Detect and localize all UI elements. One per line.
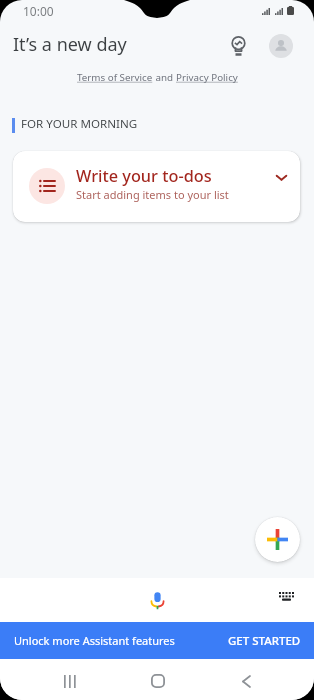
button[interactable]: Home [138, 661, 178, 700]
staticText: 10:00 [23, 3, 54, 19]
button[interactable]: Voice search [140, 583, 174, 617]
staticText: Unlock more Assistant features [14, 633, 175, 648]
staticText: FOR YOUR MORNING [21, 116, 138, 131]
staticText: Start adding items to your list [76, 187, 229, 202]
button[interactable]: Unlock more Assistant features [0, 622, 314, 659]
button[interactable]: Recent apps [50, 661, 90, 700]
staticText: GET STARTED [228, 633, 301, 649]
staticText: It’s a new day [13, 32, 127, 57]
button[interactable]: Back [226, 661, 266, 700]
button[interactable]: Add [255, 517, 300, 562]
button[interactable]: Terms of Service [77, 71, 153, 84]
button[interactable]: Write your to-dos [13, 151, 300, 222]
button[interactable]: Keyboard [272, 583, 300, 611]
staticText: Write your to-dos [76, 165, 212, 187]
button[interactable]: Explore [222, 30, 254, 62]
button[interactable]: Privacy Policy [176, 71, 238, 84]
button[interactable]: Account [269, 34, 293, 58]
staticText: and [153, 71, 176, 84]
button[interactable]: Expand [269, 165, 293, 189]
